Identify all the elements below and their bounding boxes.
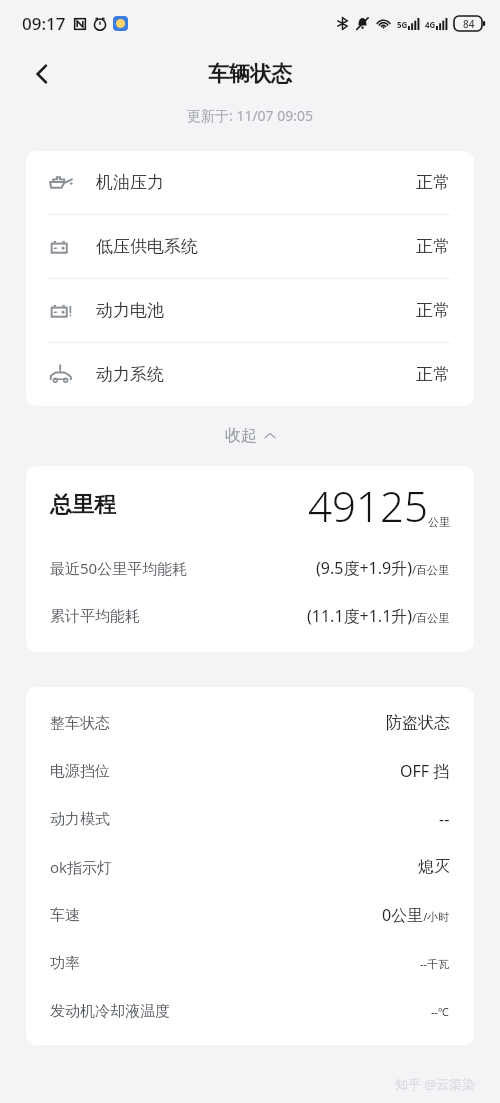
staticText: 正常 bbox=[416, 300, 450, 321]
button[interactable]: 收起 bbox=[0, 406, 500, 466]
button[interactable]: 动力系统 bbox=[26, 343, 474, 406]
staticText: OFF 挡 bbox=[400, 760, 450, 782]
button[interactable]: 电源挡位 bbox=[26, 747, 474, 795]
staticText: (11.1度+1.1升)/百公里 bbox=[307, 605, 450, 627]
staticText: 动力系统 bbox=[96, 364, 164, 385]
staticText: 功率 bbox=[50, 954, 80, 973]
staticText: 正常 bbox=[416, 172, 450, 193]
staticText: 总里程 bbox=[50, 491, 116, 519]
staticText: 电源挡位 bbox=[50, 762, 110, 781]
staticText: 公里 bbox=[428, 515, 450, 529]
button[interactable]: 功率 bbox=[26, 939, 474, 987]
button[interactable]: 发动机冷却液温度 bbox=[26, 987, 474, 1035]
staticText: 收起 bbox=[225, 426, 257, 446]
staticText: 0公里/小时 bbox=[382, 904, 450, 926]
staticText: 正常 bbox=[416, 364, 450, 385]
button[interactable]: ok指示灯 bbox=[26, 843, 474, 891]
staticText: 正常 bbox=[416, 236, 450, 257]
staticText: 49125 bbox=[308, 477, 428, 534]
staticText: 更新于: 11/07 09:05 bbox=[187, 106, 314, 125]
staticText: 知乎 @云渠染 bbox=[395, 1075, 476, 1093]
staticText: 最近50公里平均能耗 bbox=[50, 558, 188, 578]
staticText: 动力电池 bbox=[96, 300, 164, 321]
staticText: -- bbox=[439, 808, 450, 830]
staticText: --℃ bbox=[431, 1004, 450, 1019]
button[interactable]: 整车状态 bbox=[26, 699, 474, 747]
button[interactable]: 返回 bbox=[22, 54, 62, 94]
button[interactable]: 动力电池 bbox=[26, 279, 474, 343]
staticText: 累计平均能耗 bbox=[50, 607, 140, 626]
staticText: 09:17 bbox=[22, 12, 66, 35]
button[interactable]: 最近50公里平均能耗 bbox=[26, 544, 474, 592]
staticText: 熄灭 bbox=[418, 857, 450, 877]
button[interactable]: 动力模式 bbox=[26, 795, 474, 843]
staticText: 车辆状态 bbox=[208, 61, 292, 87]
staticText: 5G bbox=[397, 19, 408, 30]
staticText: 整车状态 bbox=[50, 714, 110, 733]
staticText: 低压供电系统 bbox=[96, 236, 198, 257]
staticText: 4G bbox=[425, 19, 436, 30]
button[interactable]: 低压供电系统 bbox=[26, 215, 474, 279]
staticText: ok指示灯 bbox=[50, 857, 113, 877]
button[interactable]: 机油压力 bbox=[26, 151, 474, 215]
staticText: 车速 bbox=[50, 906, 80, 925]
button[interactable]: 车速 bbox=[26, 891, 474, 939]
staticText: (9.5度+1.9升)/百公里 bbox=[316, 557, 450, 579]
staticText: 机油压力 bbox=[96, 172, 164, 193]
staticText: 84 bbox=[463, 17, 475, 31]
staticText: 防盗状态 bbox=[386, 713, 450, 733]
button[interactable]: 累计平均能耗 bbox=[26, 592, 474, 640]
staticText: 动力模式 bbox=[50, 810, 110, 829]
staticText: 发动机冷却液温度 bbox=[50, 1002, 170, 1021]
staticText: --千瓦 bbox=[420, 956, 450, 971]
